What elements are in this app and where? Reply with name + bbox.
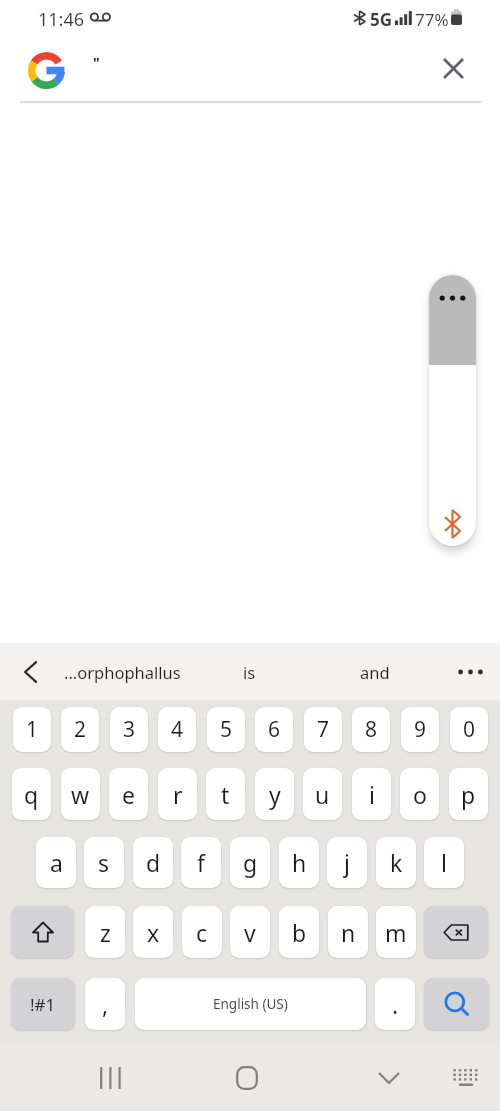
- staticText: w: [71, 779, 90, 810]
- button[interactable]: ...orphophallus: [45, 643, 200, 700]
- staticText: 11:46: [38, 7, 85, 32]
- button[interactable]: h: [279, 837, 319, 888]
- staticText: y: [269, 779, 281, 810]
- button[interactable]: g: [230, 837, 270, 888]
- button[interactable]: [28, 52, 65, 89]
- staticText: l: [441, 847, 447, 878]
- staticText: !#1: [30, 993, 56, 1016]
- staticText: 5: [220, 715, 233, 744]
- button[interactable]: .: [375, 978, 415, 1030]
- staticText: m: [385, 917, 407, 948]
- staticText: t: [221, 779, 230, 810]
- button[interactable]: and: [299, 643, 451, 700]
- button[interactable]: s: [84, 837, 124, 888]
- staticText: o: [413, 779, 427, 810]
- button[interactable]: e: [109, 768, 148, 820]
- button[interactable]: English (US): [135, 978, 366, 1030]
- button[interactable]: [364, 1053, 414, 1103]
- button[interactable]: [10, 650, 50, 694]
- staticText: d: [146, 847, 161, 878]
- staticText: 5G: [370, 8, 393, 31]
- button[interactable]: 0: [450, 707, 488, 752]
- button[interactable]: m: [376, 906, 416, 958]
- button[interactable]: a: [36, 837, 76, 888]
- button[interactable]: y: [255, 768, 294, 820]
- staticText: 0: [463, 715, 476, 744]
- button[interactable]: [424, 978, 489, 1030]
- staticText: g: [243, 847, 258, 878]
- button[interactable]: 8: [352, 707, 390, 752]
- button[interactable]: x: [133, 906, 173, 958]
- staticText: v: [244, 917, 256, 948]
- button[interactable]: r: [158, 768, 197, 820]
- staticText: .: [392, 989, 399, 1020]
- staticText: a: [50, 847, 63, 878]
- button[interactable]: 5: [207, 707, 245, 752]
- button[interactable]: i: [352, 768, 391, 820]
- button[interactable]: 2: [61, 707, 99, 752]
- staticText: s: [98, 847, 110, 878]
- button[interactable]: [222, 1053, 272, 1103]
- staticText: ": [93, 53, 100, 72]
- staticText: z: [100, 917, 111, 948]
- staticText: 2: [74, 715, 87, 744]
- button[interactable]: [11, 906, 74, 958]
- staticText: n: [341, 917, 356, 948]
- button[interactable]: p: [449, 768, 488, 820]
- staticText: r: [173, 779, 183, 810]
- button[interactable]: [442, 1056, 490, 1100]
- button[interactable]: [85, 1053, 135, 1103]
- button[interactable]: w: [61, 768, 100, 820]
- staticText: e: [122, 779, 135, 810]
- staticText: 9: [414, 715, 427, 744]
- button[interactable]: is: [200, 643, 299, 700]
- button[interactable]: 6: [255, 707, 293, 752]
- staticText: f: [197, 847, 205, 878]
- button[interactable]: o: [400, 768, 439, 820]
- button[interactable]: 9: [401, 707, 439, 752]
- button[interactable]: z: [85, 906, 125, 958]
- button[interactable]: k: [376, 837, 416, 888]
- button[interactable]: [448, 650, 492, 694]
- staticText: k: [390, 847, 403, 878]
- button[interactable]: u: [303, 768, 342, 820]
- staticText: q: [24, 779, 39, 810]
- button[interactable]: c: [182, 906, 222, 958]
- button[interactable]: 1: [13, 707, 51, 752]
- button[interactable]: v: [230, 906, 270, 958]
- button[interactable]: !#1: [11, 978, 75, 1030]
- staticText: x: [147, 917, 160, 948]
- button[interactable]: [429, 275, 476, 546]
- button[interactable]: 4: [158, 707, 196, 752]
- button[interactable]: q: [12, 768, 51, 820]
- button[interactable]: t: [206, 768, 245, 820]
- staticText: is: [243, 661, 256, 683]
- button[interactable]: [434, 49, 472, 87]
- button[interactable]: ,: [85, 978, 125, 1030]
- button[interactable]: f: [181, 837, 221, 888]
- staticText: 1: [26, 715, 39, 744]
- staticText: 4: [171, 715, 184, 744]
- staticText: j: [344, 847, 350, 878]
- staticText: ...orphophallus: [64, 661, 181, 683]
- staticText: u: [315, 779, 330, 810]
- staticText: b: [292, 917, 307, 948]
- button[interactable]: j: [327, 837, 367, 888]
- button[interactable]: [424, 906, 488, 958]
- staticText: i: [369, 779, 375, 810]
- staticText: h: [292, 847, 307, 878]
- button[interactable]: l: [424, 837, 464, 888]
- button[interactable]: b: [279, 906, 319, 958]
- staticText: c: [196, 917, 208, 948]
- staticText: 6: [268, 715, 281, 744]
- button[interactable]: 7: [304, 707, 342, 752]
- button[interactable]: n: [328, 906, 368, 958]
- staticText: and: [360, 661, 390, 683]
- staticText: English (US): [213, 995, 288, 1013]
- button[interactable]: d: [133, 837, 173, 888]
- staticText: 3: [123, 715, 136, 744]
- staticText: 77%: [415, 8, 449, 31]
- staticText: ,: [102, 989, 109, 1020]
- staticText: p: [461, 779, 476, 810]
- button[interactable]: 3: [110, 707, 148, 752]
